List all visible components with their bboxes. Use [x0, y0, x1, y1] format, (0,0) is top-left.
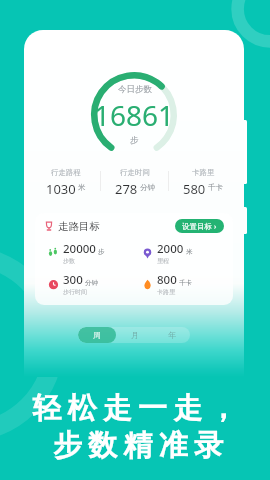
staticText: 里程: [157, 257, 169, 265]
staticText: 步: [98, 248, 105, 256]
staticText: 周: [93, 330, 101, 340]
staticText: 步: [130, 135, 139, 146]
staticText: 步数: [63, 257, 75, 265]
staticText: 米: [78, 183, 86, 192]
staticText: 千卡: [208, 183, 223, 192]
staticText: 2000: [157, 241, 184, 257]
staticText: 278: [115, 180, 138, 194]
staticText: 年: [168, 330, 176, 340]
staticText: 卡路里: [157, 288, 175, 296]
staticText: 行走时间: [120, 168, 150, 177]
staticText: 走路目标: [58, 220, 100, 233]
staticText: 20000: [63, 241, 96, 257]
staticText: 300: [63, 272, 83, 288]
staticText: 800: [157, 272, 177, 288]
staticText: 分钟: [140, 183, 155, 192]
button[interactable]: 月: [116, 327, 153, 343]
staticText: 轻松走一走，: [32, 390, 244, 427]
staticText: 千卡: [179, 279, 192, 287]
staticText: 步行时间: [63, 288, 87, 296]
button[interactable]: 周: [78, 327, 116, 343]
button[interactable]: 年: [153, 327, 190, 343]
staticText: 580: [183, 180, 206, 194]
staticText: 分钟: [85, 279, 98, 287]
staticText: 月: [131, 330, 139, 340]
staticText: 卡路里: [192, 168, 215, 177]
staticText: 设置目标 ›: [182, 221, 217, 231]
staticText: 米: [186, 248, 193, 256]
staticText: 今日步数: [118, 84, 152, 95]
staticText: 步数精准录: [50, 427, 226, 464]
staticText: 16861: [94, 96, 175, 134]
button[interactable]: 设置目标 ›: [175, 219, 224, 233]
staticText: 行走路程: [51, 168, 81, 177]
staticText: 1030: [46, 180, 76, 194]
